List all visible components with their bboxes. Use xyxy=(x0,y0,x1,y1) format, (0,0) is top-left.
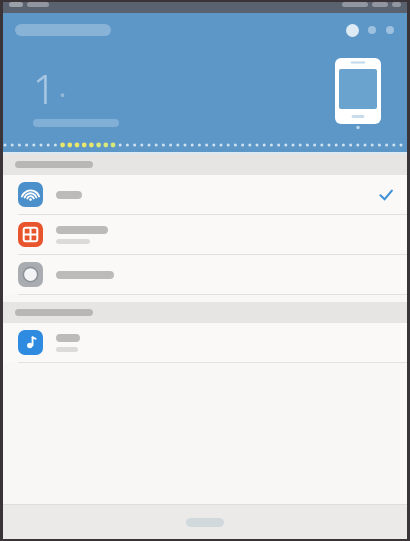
staticText: · xyxy=(59,76,66,111)
button[interactable] xyxy=(3,215,407,254)
button[interactable]: More xyxy=(363,21,381,39)
button[interactable]: Action xyxy=(341,19,363,41)
button[interactable]: Settings xyxy=(381,21,399,39)
button[interactable] xyxy=(3,255,407,294)
button[interactable] xyxy=(3,505,407,539)
staticText: 1 xyxy=(33,61,56,115)
button[interactable] xyxy=(3,323,407,362)
button[interactable] xyxy=(3,175,407,214)
